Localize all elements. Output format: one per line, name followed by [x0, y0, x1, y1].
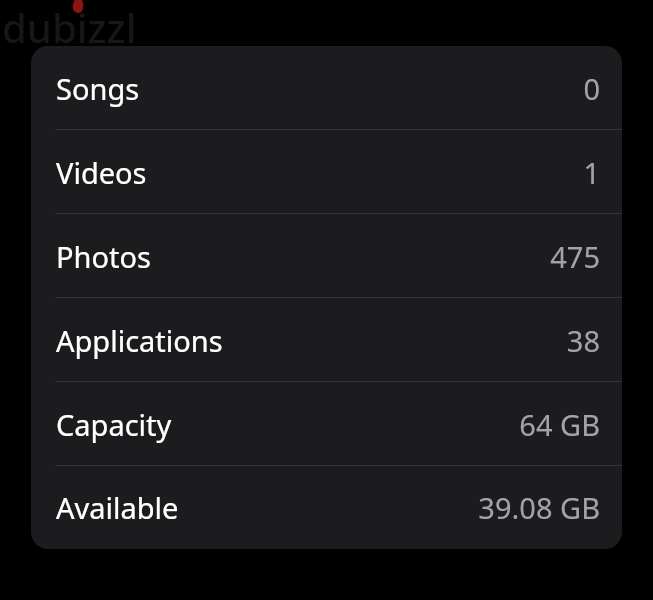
- staticText: Capacity: [56, 405, 172, 444]
- staticText: Videos: [56, 153, 147, 192]
- button[interactable]: Available: [31, 466, 622, 549]
- staticText: Available: [56, 488, 179, 527]
- staticText: Photos: [56, 237, 151, 276]
- staticText: 1: [583, 153, 600, 192]
- staticText: Songs: [56, 69, 140, 108]
- button[interactable]: Songs: [31, 46, 622, 130]
- button[interactable]: Applications: [31, 298, 622, 382]
- staticText: 475: [550, 237, 600, 276]
- button[interactable]: Videos: [31, 130, 622, 214]
- staticText: dubizzle: [2, 0, 152, 48]
- staticText: Applications: [56, 321, 223, 360]
- staticText: 0: [583, 69, 600, 108]
- staticText: 38: [566, 321, 600, 360]
- staticText: 64 GB: [519, 405, 600, 444]
- staticText: 39.08 GB: [478, 488, 600, 527]
- button[interactable]: Capacity: [31, 382, 622, 466]
- button[interactable]: Photos: [31, 214, 622, 298]
